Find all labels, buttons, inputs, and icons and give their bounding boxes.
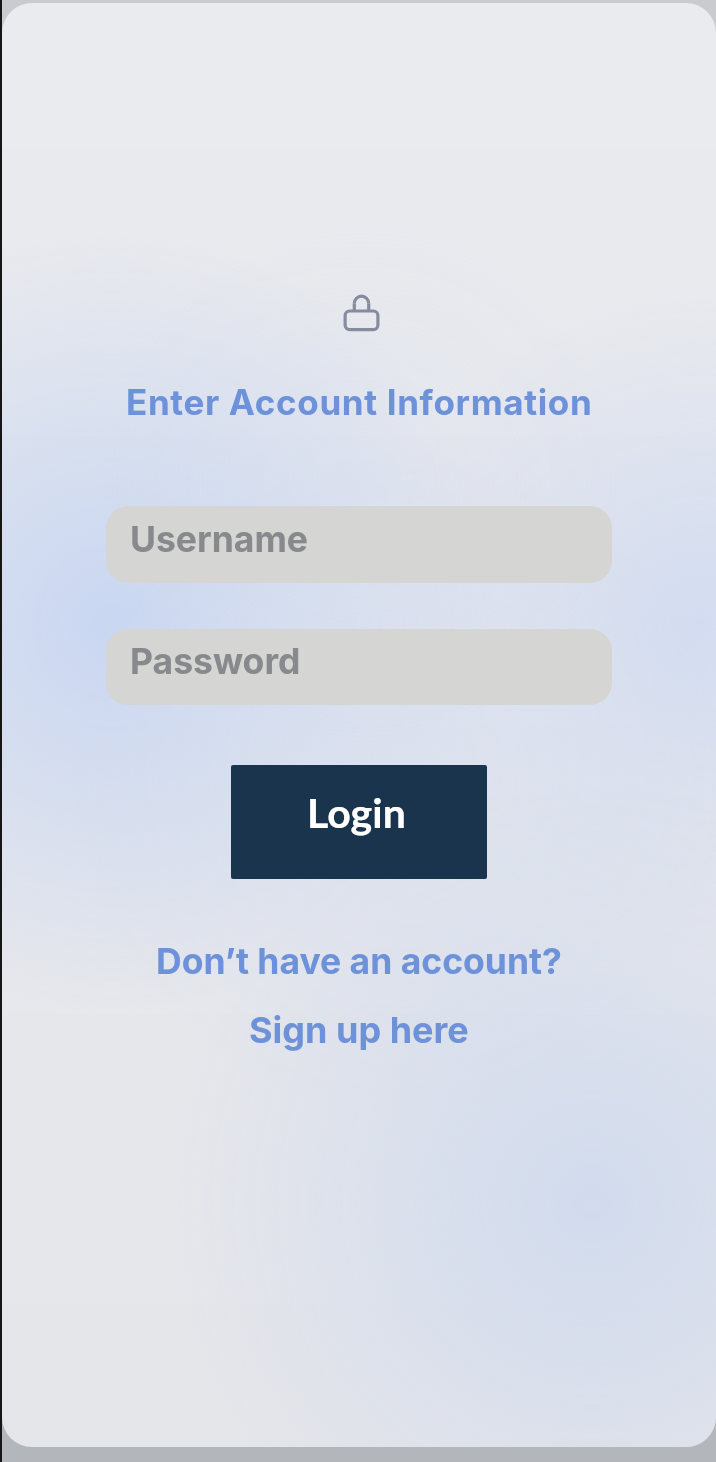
button[interactable]: Don’t have an account? <box>156 943 562 986</box>
button[interactable]: Login <box>231 765 487 879</box>
button[interactable]: Username <box>106 506 612 583</box>
button[interactable]: Password <box>106 629 612 705</box>
staticText: Enter Account Information <box>126 381 593 423</box>
staticText: Username <box>130 518 308 561</box>
button[interactable]: Sign up here <box>249 1012 469 1056</box>
staticText: Login <box>307 788 406 837</box>
staticText: Password <box>130 640 301 683</box>
